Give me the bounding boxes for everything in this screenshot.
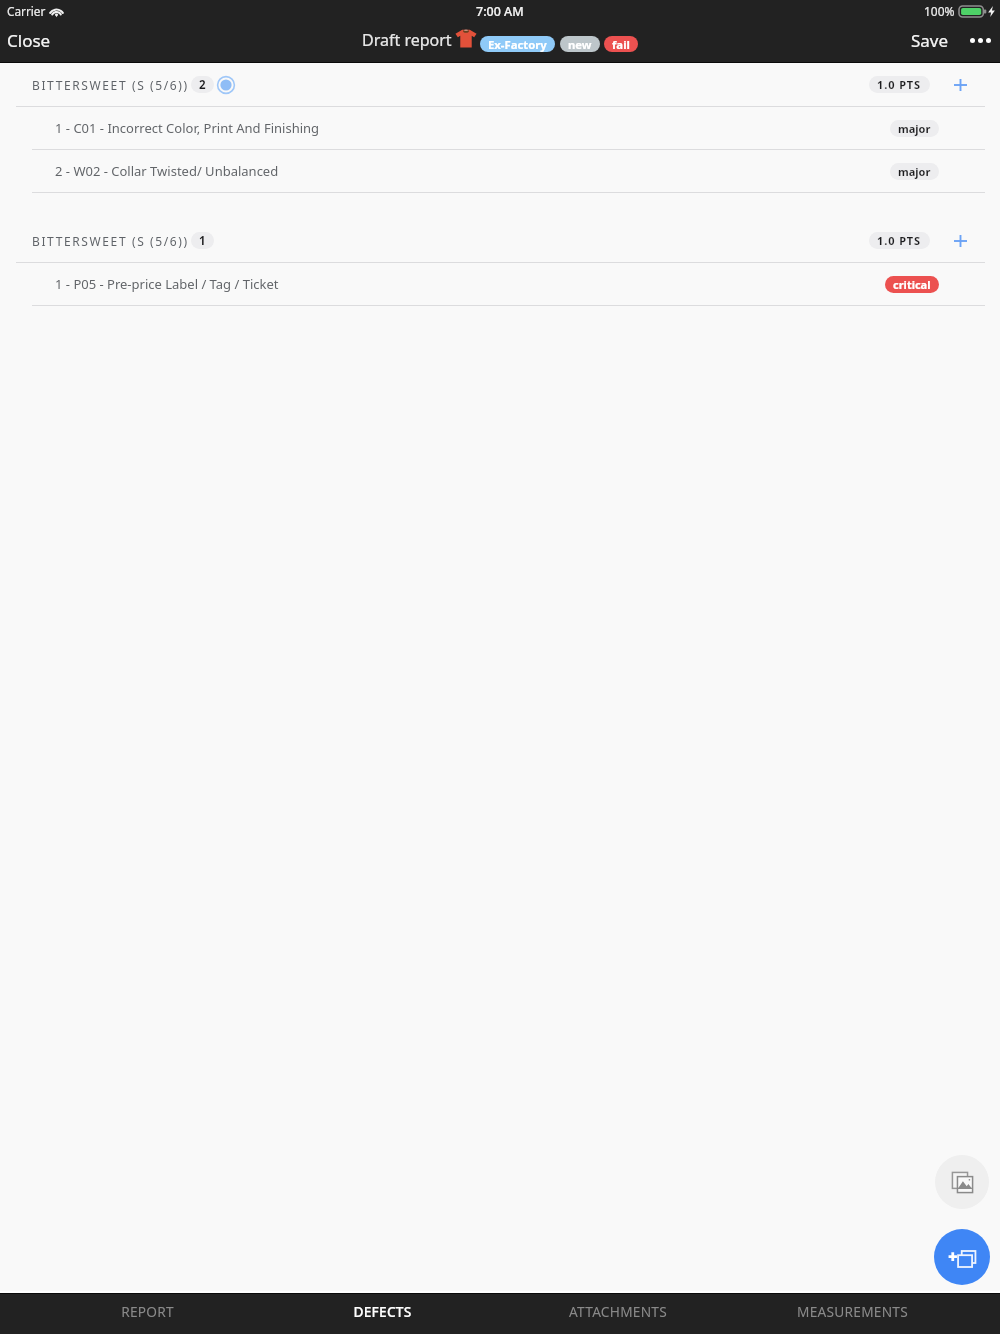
button[interactable]: Photos bbox=[935, 1155, 989, 1209]
staticText: 2 - W02 - Collar Twisted/ Unbalanced bbox=[55, 162, 279, 180]
staticText: Close bbox=[7, 29, 51, 51]
button[interactable]: 1 - P05 - Pre-price Label / Tag / Ticket bbox=[0, 263, 1000, 306]
staticText: BITTERSWEET (S (5/6)) bbox=[32, 233, 189, 249]
staticText: major bbox=[898, 121, 931, 136]
staticText: Carrier bbox=[7, 3, 46, 19]
staticText: 100% bbox=[924, 3, 955, 19]
button[interactable]: 2 - W02 - Collar Twisted/ Unbalanced bbox=[0, 150, 1000, 193]
staticText: Save bbox=[911, 29, 949, 51]
staticText: 2 bbox=[199, 77, 206, 93]
staticText: MEASUREMENTS bbox=[797, 1302, 908, 1321]
staticText: 1.0 PTS bbox=[877, 77, 922, 92]
staticText: Ex-Factory bbox=[488, 37, 547, 52]
button[interactable]: DEFECTS bbox=[265, 1294, 500, 1334]
staticText: BITTERSWEET (S (5/6)) bbox=[32, 77, 189, 93]
staticText: new bbox=[568, 37, 592, 52]
staticText: REPORT bbox=[121, 1302, 174, 1321]
button[interactable]: Ex-Factory bbox=[480, 36, 555, 52]
button[interactable]: ATTACHMENTS bbox=[500, 1294, 735, 1334]
button[interactable]: 1 - C01 - Incorrect Color, Print And Fin… bbox=[0, 107, 1000, 150]
staticText: fail bbox=[612, 37, 630, 52]
staticText: major bbox=[898, 164, 931, 179]
staticText: Draft report bbox=[362, 29, 452, 51]
staticText: 1.0 PTS bbox=[877, 233, 922, 248]
button[interactable]: Add defect bbox=[930, 70, 985, 100]
button[interactable]: BITTERSWEET (S (5/6)) bbox=[0, 219, 1000, 263]
button[interactable]: REPORT bbox=[30, 1294, 265, 1334]
staticText: ATTACHMENTS bbox=[569, 1302, 667, 1321]
button[interactable]: MEASUREMENTS bbox=[735, 1294, 970, 1334]
button[interactable]: new bbox=[560, 36, 600, 52]
staticText: DEFECTS bbox=[353, 1302, 412, 1321]
button[interactable]: Save bbox=[903, 22, 962, 58]
staticText: critical bbox=[893, 277, 931, 292]
button[interactable]: Add defect bbox=[934, 1229, 990, 1285]
staticText: 1 - P05 - Pre-price Label / Tag / Ticket bbox=[55, 275, 279, 293]
button[interactable]: Add defect bbox=[930, 226, 985, 256]
button[interactable]: Close bbox=[0, 22, 63, 58]
button[interactable]: More options bbox=[962, 26, 1000, 55]
button[interactable]: fail bbox=[604, 36, 638, 52]
staticText: 7:00 AM bbox=[476, 3, 524, 20]
staticText: 1 - C01 - Incorrect Color, Print And Fin… bbox=[55, 119, 320, 137]
staticText: 1 bbox=[199, 233, 206, 249]
button[interactable]: BITTERSWEET (S (5/6)) bbox=[0, 63, 1000, 107]
